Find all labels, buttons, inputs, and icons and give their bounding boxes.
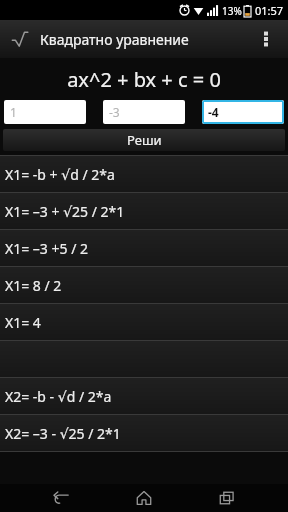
button[interactable]: -4 bbox=[202, 100, 284, 124]
button[interactable]: X2= –3 - √25 / 2*1 bbox=[0, 415, 288, 451]
button[interactable]: X1= 4 bbox=[0, 304, 288, 340]
button[interactable]: X1= –3 + √25 / 2*1 bbox=[0, 193, 288, 229]
staticText: X2= –3 - √25 / 2*1 bbox=[5, 424, 121, 443]
staticText: X1= 4 bbox=[5, 313, 41, 332]
button[interactable]: Реши bbox=[3, 129, 285, 151]
button[interactable]: Back bbox=[39, 484, 83, 512]
staticText: -4 bbox=[208, 104, 219, 120]
staticText: Реши bbox=[127, 131, 162, 149]
staticText: X1= 8 / 2 bbox=[5, 276, 62, 295]
button[interactable]: X1= –3 +5 / 2 bbox=[0, 230, 288, 266]
staticText: -3 bbox=[109, 104, 120, 120]
button[interactable]: More options bbox=[252, 20, 280, 58]
staticText: X1= –3 +5 / 2 bbox=[5, 239, 89, 258]
staticText: 1 bbox=[10, 104, 17, 120]
button[interactable]: X1= -b + √d / 2*a bbox=[0, 156, 288, 192]
staticText: 13% bbox=[222, 4, 242, 18]
staticText: 01:57 bbox=[255, 3, 284, 18]
button[interactable]: Recent apps bbox=[205, 484, 249, 512]
staticText: ax^2 + bx + c = 0 bbox=[67, 66, 221, 93]
button[interactable]: 1 bbox=[4, 100, 86, 124]
button[interactable]: -3 bbox=[103, 100, 185, 124]
staticText: X1= –3 + √25 / 2*1 bbox=[5, 202, 125, 221]
staticText: X2= -b - √d / 2*a bbox=[5, 387, 112, 406]
button[interactable]: X1= 8 / 2 bbox=[0, 267, 288, 303]
staticText: Квадратно уравнение bbox=[40, 30, 189, 49]
button[interactable]: X2= -b - √d / 2*a bbox=[0, 378, 288, 414]
staticText: X1= -b + √d / 2*a bbox=[5, 165, 115, 184]
button[interactable]: Home bbox=[122, 484, 166, 512]
